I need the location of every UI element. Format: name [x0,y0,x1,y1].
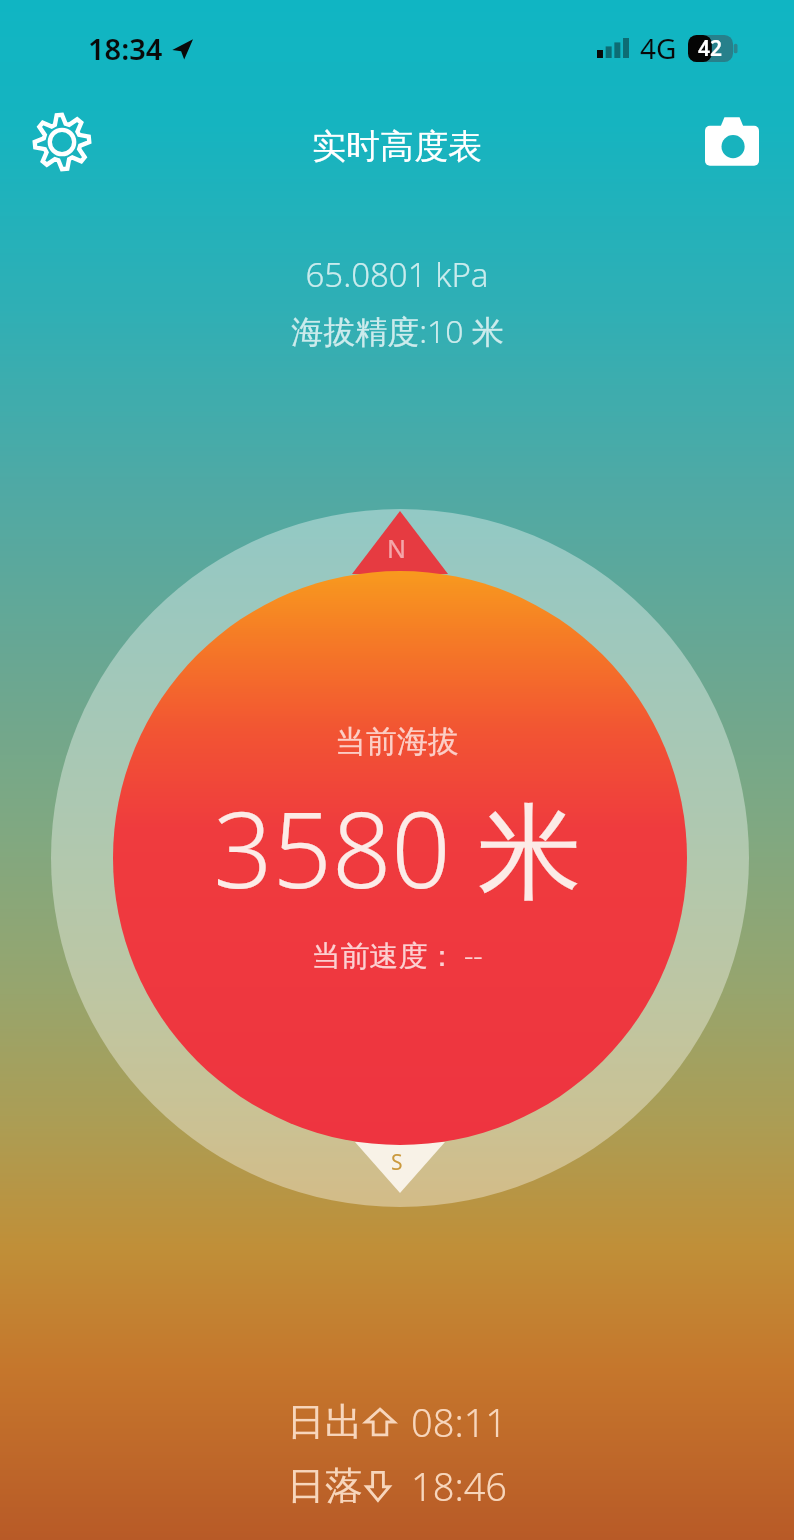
staticText: 海拔精度:10 米 [291,309,504,353]
staticText: 4G [640,29,677,67]
button[interactable]: Camera [690,100,774,184]
staticText: 08:11 [411,1396,508,1448]
staticText: 3580 米 [213,777,582,919]
staticText: 日出 [287,1398,363,1446]
staticText: S [391,1148,403,1177]
staticText: 实时高度表 [312,125,482,168]
button[interactable]: Settings [20,100,104,184]
staticText: 当前海拔 [335,722,459,761]
staticText: 65.0801 kPa [305,252,489,297]
staticText: 当前速度： -- [311,935,483,975]
button[interactable]: 当前海拔 [0,722,794,975]
staticText: 日落 [287,1462,363,1510]
staticText: 18:46 [411,1460,508,1512]
staticText: 18:34 [88,29,163,68]
staticText: 42 [698,34,723,63]
staticText: N [387,531,407,565]
